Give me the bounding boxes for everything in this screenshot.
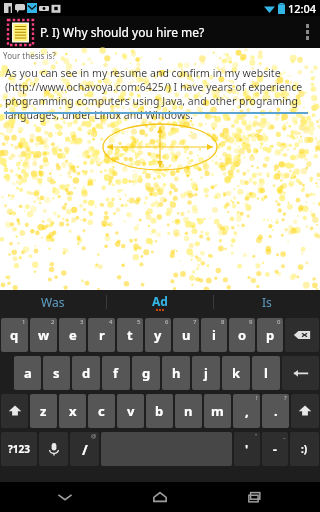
button[interactable]: Was (0, 290, 106, 314)
staticText: 6 (165, 318, 169, 326)
staticText: Your thesis is? (3, 50, 56, 61)
staticText: - (273, 441, 277, 457)
button[interactable]: l (252, 356, 280, 390)
button[interactable]: . (262, 394, 289, 428)
button[interactable]: v (117, 394, 144, 428)
staticText: i (212, 326, 216, 344)
staticText: As you can see in my resume and confirm … (5, 66, 314, 122)
button[interactable]: z (30, 394, 57, 428)
staticText: s (53, 364, 60, 382)
button[interactable]: d (72, 356, 100, 390)
button[interactable]: Voice input (39, 432, 68, 466)
button[interactable]: e (59, 318, 86, 352)
staticText: t (127, 326, 133, 344)
staticText: . (274, 402, 278, 420)
button[interactable]: Is (214, 290, 320, 314)
staticText: q (10, 326, 19, 344)
staticText: ' (245, 441, 249, 457)
button[interactable]: ?123 (1, 432, 37, 466)
staticText: / (82, 440, 88, 459)
button[interactable]: b (146, 394, 173, 428)
staticText: 3 (80, 318, 84, 326)
staticText: Ad (152, 293, 168, 309)
button[interactable]: r (88, 318, 115, 352)
staticText: z (40, 402, 47, 420)
staticText: f (113, 364, 119, 382)
button[interactable]: Backspace (285, 318, 319, 352)
button[interactable]: y (145, 318, 171, 352)
staticText: 2 (51, 318, 55, 326)
button[interactable]: f (102, 356, 130, 390)
button[interactable]: More options (294, 16, 320, 48)
button[interactable]: t (117, 318, 143, 352)
button[interactable]: h (162, 356, 190, 390)
button[interactable]: - (262, 432, 288, 466)
button[interactable]: u (173, 318, 199, 352)
button[interactable]: a (14, 356, 41, 390)
button[interactable]: :) (290, 432, 319, 466)
button[interactable]: q (1, 318, 28, 352)
staticText: y (154, 326, 162, 344)
staticText: l (264, 364, 268, 382)
staticText: j (204, 364, 208, 382)
staticText: 7 (193, 318, 197, 326)
button[interactable]: Shift (291, 394, 319, 428)
staticText: c (98, 402, 105, 420)
staticText: o (238, 326, 247, 344)
button[interactable]: p (257, 318, 283, 352)
button[interactable]: n (175, 394, 202, 428)
staticText: , (245, 402, 249, 420)
button[interactable]: Back (35, 482, 95, 512)
button[interactable]: , (233, 394, 260, 428)
button[interactable]: Home (130, 482, 190, 512)
staticText: n (184, 402, 193, 420)
button[interactable]: w (30, 318, 57, 352)
button[interactable]: ' (234, 432, 260, 466)
button[interactable]: Shift (1, 394, 28, 428)
staticText: ? (284, 394, 287, 402)
button[interactable]: s (43, 356, 70, 390)
staticText: 12:04 (288, 1, 317, 16)
staticText: h (172, 364, 181, 382)
staticText: k (232, 364, 241, 382)
staticText: " (255, 432, 258, 440)
staticText: 0 (277, 318, 281, 326)
button[interactable]: i (201, 318, 227, 352)
staticText: a (24, 364, 32, 382)
staticText: g (142, 364, 151, 382)
staticText: 8 (221, 318, 225, 326)
button[interactable]: / (70, 432, 99, 466)
button[interactable]: g (132, 356, 160, 390)
button[interactable]: m (204, 394, 231, 428)
staticText: ! (256, 394, 258, 402)
staticText: b (155, 402, 164, 420)
button[interactable]: Ad (107, 290, 213, 314)
staticText: 4 (109, 318, 113, 326)
button[interactable]: x (59, 394, 86, 428)
button[interactable]: Recent apps (225, 482, 285, 512)
staticText: u (182, 326, 191, 344)
button[interactable]: j (192, 356, 220, 390)
button[interactable]: Enter (282, 356, 319, 390)
staticText: x (69, 402, 77, 420)
staticText: 1 (22, 318, 26, 326)
button[interactable]: o (229, 318, 255, 352)
staticText: 9 (249, 318, 253, 326)
staticText: 5 (137, 318, 141, 326)
staticText: _ (283, 432, 286, 440)
button[interactable]: k (222, 356, 250, 390)
staticText: ?123 (8, 442, 30, 456)
staticText: P. I) Why should you hire me? (40, 24, 294, 40)
staticText: Is (262, 294, 272, 310)
button[interactable] (7, 19, 33, 45)
staticText: r (99, 326, 105, 344)
button[interactable]: c (88, 394, 115, 428)
staticText: Was (41, 294, 65, 310)
staticText: d (82, 364, 91, 382)
staticText: m (211, 402, 224, 420)
staticText: p (266, 326, 275, 344)
staticText: :) (301, 442, 308, 456)
staticText: w (38, 326, 50, 344)
staticText: e (69, 326, 77, 344)
